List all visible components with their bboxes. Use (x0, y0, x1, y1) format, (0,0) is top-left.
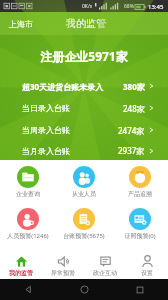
staticText: 政企互动 (93, 269, 117, 277)
button[interactable]: 人员预警(1246) (0, 206, 56, 242)
staticText: 当日录入台账 (22, 103, 70, 113)
staticText: 上海市 (9, 19, 33, 29)
button[interactable]: 当月录入台账 (0, 141, 168, 160)
button[interactable]: 当周录入台账 (0, 119, 168, 141)
button[interactable]: Home (56, 279, 112, 300)
staticText: 异常预警 (51, 269, 75, 277)
staticText: 设置 (141, 269, 153, 277)
staticText: 380家 (123, 81, 145, 92)
staticText: 人员预警(1246) (7, 232, 49, 240)
staticText: 台账预警(5675) (63, 232, 105, 240)
button[interactable]: 证照预警(0) (112, 206, 168, 242)
button[interactable]: Back (0, 279, 56, 300)
staticText: 248家 (123, 103, 145, 114)
staticText: 产品追溯 (128, 190, 152, 198)
button[interactable]: 台账预警(5675) (56, 206, 112, 242)
button[interactable]: Recent apps (112, 279, 168, 300)
button[interactable]: 从业人员 (56, 164, 112, 200)
staticText: 0K/s (82, 3, 93, 10)
staticText: 当周录入台账 (22, 125, 70, 135)
staticText: 企业查询 (16, 190, 40, 198)
staticText: 2937家 (118, 145, 145, 156)
button[interactable]: 超30天进货台账未录入 (0, 75, 168, 97)
button[interactable]: 上海市 (0, 15, 42, 33)
button[interactable]: 设置 (126, 253, 168, 279)
button[interactable]: 政企互动 (84, 253, 126, 279)
staticText: 13:45 (148, 3, 164, 11)
staticText: 超30天进货台账未录入 (22, 81, 104, 92)
staticText: 2474家 (118, 125, 145, 136)
staticText: 我的监管 (9, 269, 33, 277)
staticText: 从业人员 (72, 190, 96, 198)
button[interactable]: 企业查询 (0, 164, 56, 200)
staticText: 我的监管 (66, 17, 106, 30)
staticText: 当月录入台账 (22, 146, 70, 156)
button[interactable]: 异常预警 (42, 253, 84, 279)
staticText: 注册企业5971家 (0, 48, 168, 64)
staticText: 证照预警(0) (124, 232, 156, 240)
staticText: 68% (124, 3, 134, 10)
button[interactable]: 我的监管 (0, 253, 42, 279)
button[interactable]: 产品追溯 (112, 164, 168, 200)
button[interactable]: 当日录入台账 (0, 97, 168, 119)
